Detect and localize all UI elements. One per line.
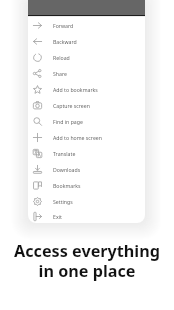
staticText: Access everything in one place [14,240,160,282]
staticText: Share [53,70,67,77]
staticText: Settings [53,198,73,205]
button[interactable]: Forward [28,17,145,33]
staticText: Capture screen [53,102,90,109]
staticText: Find in page [53,118,83,125]
button[interactable]: Exit [28,209,145,223]
staticText: Add to bookmarks [53,86,98,93]
button[interactable]: Settings [28,193,145,209]
button[interactable]: Add to bookmarks [28,81,145,97]
button[interactable]: Reload [28,49,145,65]
staticText: Bookmarks [53,182,81,189]
staticText: Forward [53,22,74,29]
button[interactable]: Translate [28,145,145,161]
button[interactable]: Add to home screen [28,129,145,145]
staticText: Translate [53,150,76,157]
button[interactable]: Share [28,65,145,81]
staticText: Add to home screen [53,134,102,141]
button[interactable]: Find in page [28,113,145,129]
button[interactable]: Downloads [28,161,145,177]
button[interactable]: Bookmarks [28,177,145,193]
staticText: Downloads [53,166,81,173]
staticText: Backward [53,38,77,45]
button[interactable]: Backward [28,33,145,49]
button[interactable]: Capture screen [28,97,145,113]
staticText: Reload [53,54,70,61]
staticText: Exit [53,213,62,220]
